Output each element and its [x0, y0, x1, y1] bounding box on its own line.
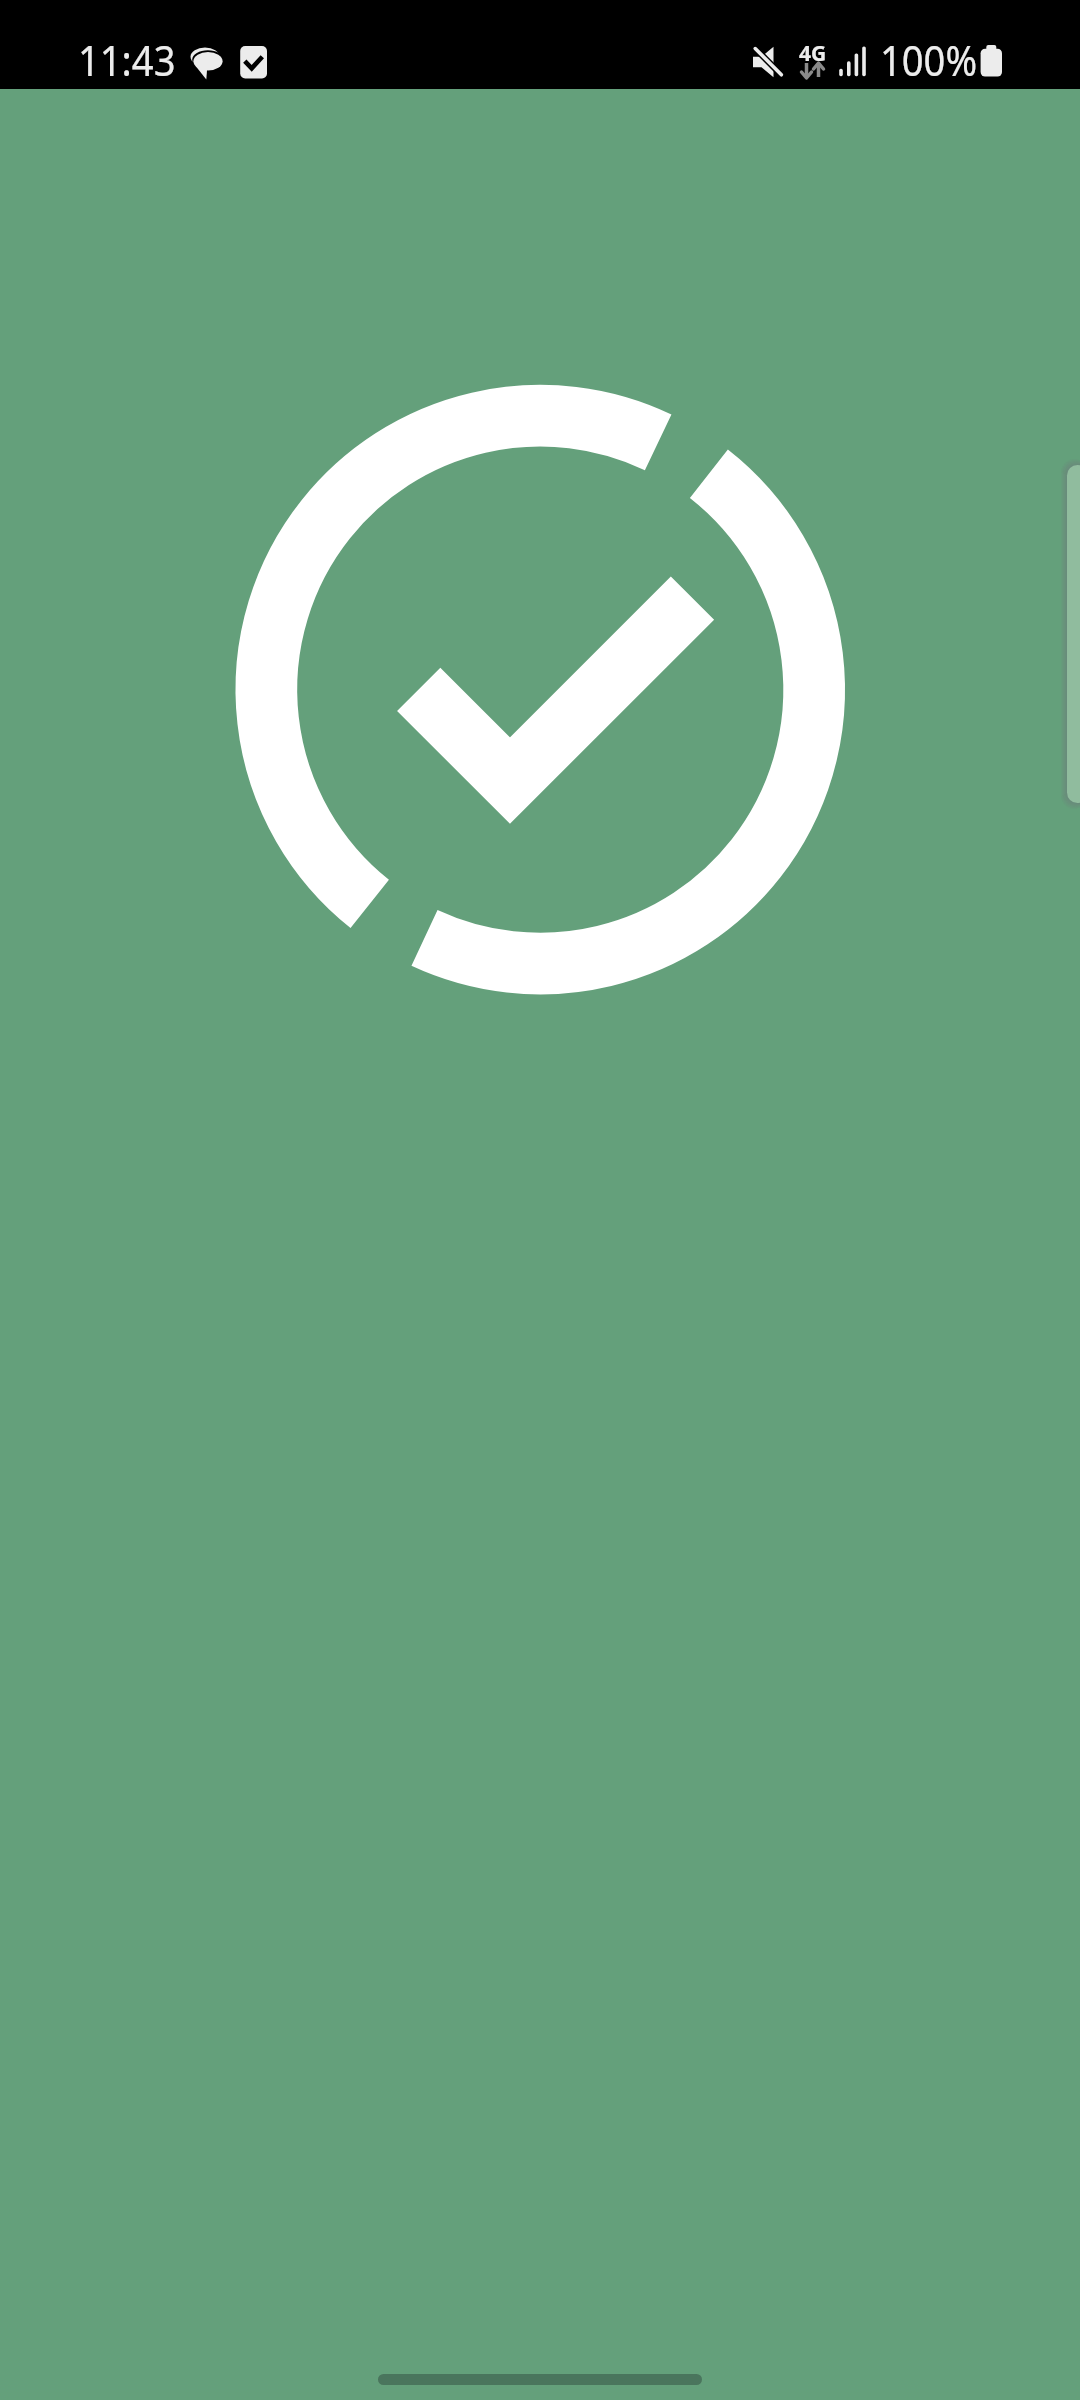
button[interactable]: Open edge panel [1060, 458, 1080, 810]
staticText: 11:43 [78, 32, 176, 88]
staticText: 4G [799, 39, 827, 68]
other: App logo: check mark inside a broken rin… [0, 0, 1080, 2400]
staticText: 100% [880, 32, 978, 88]
button[interactable]: Home [378, 2374, 702, 2385]
